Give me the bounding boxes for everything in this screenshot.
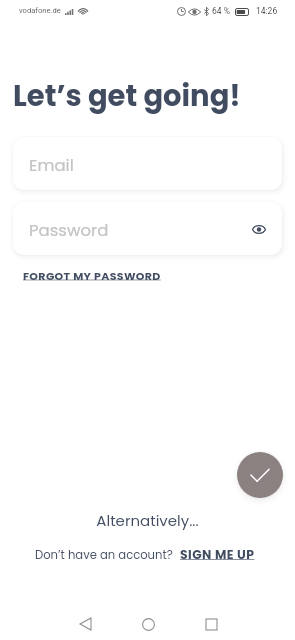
staticText: FORGOT MY PASSWORD bbox=[23, 268, 161, 283]
button[interactable]: Password bbox=[13, 202, 282, 255]
button[interactable]: FORGOT MY PASSWORD bbox=[22, 266, 162, 285]
button[interactable]: Recent apps bbox=[195, 608, 227, 640]
staticText: SIGN ME UP bbox=[180, 546, 255, 563]
staticText: vodafone.de bbox=[19, 6, 61, 15]
button[interactable]: Show password bbox=[247, 217, 271, 241]
staticText: 14:26 bbox=[256, 6, 278, 16]
staticText: Alternatively... bbox=[0, 510, 295, 531]
staticText: Let’s get going! bbox=[13, 76, 241, 117]
button[interactable]: Back bbox=[69, 608, 101, 640]
staticText: 64 % bbox=[212, 6, 230, 16]
button[interactable]: Email bbox=[13, 137, 282, 190]
staticText: Password bbox=[29, 219, 109, 242]
button[interactable]: SIGN ME UP bbox=[180, 546, 255, 563]
staticText: Email bbox=[29, 154, 74, 177]
staticText: Don’t have an account? bbox=[35, 547, 173, 563]
button[interactable]: Confirm bbox=[237, 452, 283, 498]
button[interactable]: Home bbox=[132, 608, 164, 640]
